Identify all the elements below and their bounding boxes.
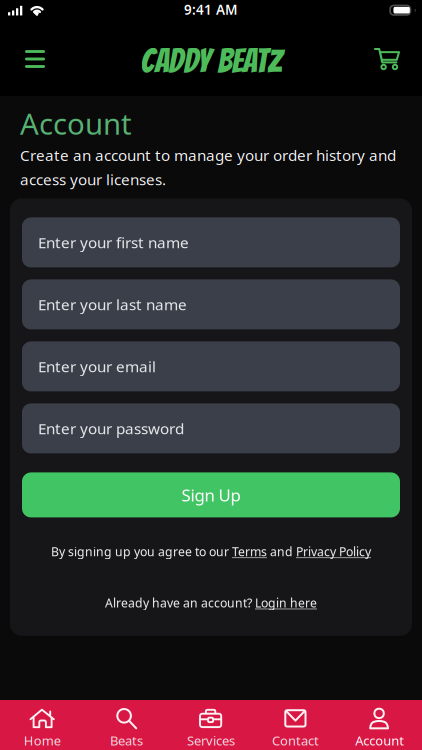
button[interactable]: Enter your email xyxy=(22,341,400,391)
button[interactable]: Account xyxy=(338,701,422,749)
staticText: Account xyxy=(20,104,132,143)
staticText: Account xyxy=(355,732,404,749)
button[interactable]: Cart xyxy=(374,47,422,71)
staticText: Services xyxy=(187,732,235,749)
button[interactable]: Contact xyxy=(253,701,338,749)
staticText: and xyxy=(267,543,296,560)
button[interactable]: Terms xyxy=(232,543,267,560)
button[interactable]: Enter your last name xyxy=(22,279,400,329)
staticText: Enter your email xyxy=(38,356,156,377)
staticText: Enter your first name xyxy=(38,232,189,253)
button[interactable]: Beats xyxy=(84,701,169,749)
button[interactable]: Menu xyxy=(0,40,45,78)
staticText: Already have an account? xyxy=(105,595,255,611)
button[interactable]: Privacy Policy xyxy=(296,543,371,560)
staticText: Create an account to manage your order h… xyxy=(20,145,396,165)
staticText: CADDY BEATZ xyxy=(140,43,281,79)
button[interactable]: Login here xyxy=(255,595,317,611)
button[interactable]: Services xyxy=(169,701,253,749)
staticText: Enter your password xyxy=(38,418,184,439)
staticText: Privacy Policy xyxy=(296,543,371,560)
staticText: Contact xyxy=(272,732,319,749)
button[interactable]: Sign Up xyxy=(22,472,400,517)
button[interactable]: Home xyxy=(0,701,84,749)
staticText: Enter your last name xyxy=(38,294,187,315)
staticText: Beats xyxy=(110,732,143,749)
staticText: Terms xyxy=(232,543,267,560)
staticText: Login here xyxy=(255,595,317,611)
button[interactable]: Enter your password xyxy=(22,403,400,453)
staticText: access your licenses. xyxy=(20,169,166,189)
staticText: By signing up you agree to our xyxy=(51,543,232,560)
staticText: Home xyxy=(24,732,61,749)
button[interactable]: Enter your first name xyxy=(22,217,400,267)
staticText: 9:41 AM xyxy=(184,1,238,18)
staticText: Sign Up xyxy=(181,484,240,506)
